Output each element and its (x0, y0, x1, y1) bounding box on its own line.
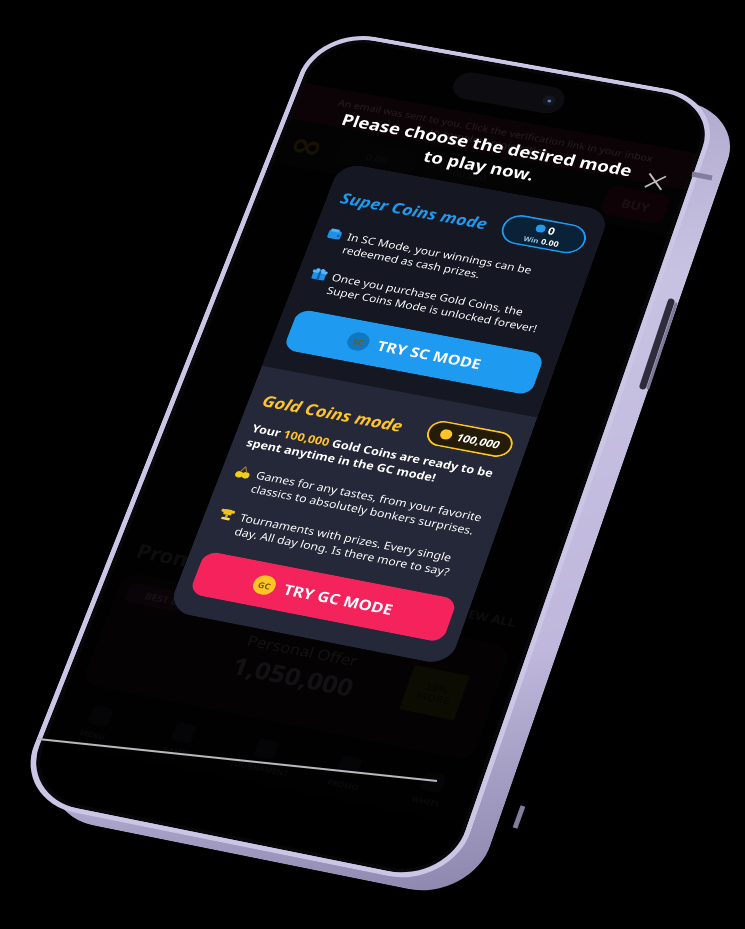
staticText: An email was sent to you. Click the veri… (332, 96, 655, 176)
staticText: Promotions (133, 536, 269, 587)
staticText: 1,050,000 (228, 648, 359, 703)
staticText: 100,000 (455, 430, 503, 451)
staticText: Win (522, 233, 543, 245)
staticText: SC (352, 336, 366, 348)
staticText: TRY SC MODE (374, 336, 484, 373)
staticText: TRY GC MODE (281, 579, 396, 620)
staticText: MENU (78, 727, 107, 742)
button[interactable]: PROMO (295, 738, 398, 808)
staticText: 0.00 (540, 236, 561, 249)
button[interactable]: WHEEL (379, 754, 482, 825)
staticText: Your 100,000 Gold Coins are ready to be … (245, 421, 505, 496)
button[interactable]: GAMES (128, 705, 232, 775)
button[interactable]: MENU (45, 688, 149, 758)
staticText: Please choose the desired mode to play n… (322, 107, 644, 203)
staticText: 100,000 (445, 165, 488, 184)
button[interactable]: Close (634, 165, 676, 198)
staticText: Tournaments with prizes. Every single da… (233, 510, 474, 582)
button[interactable]: BUY (599, 185, 671, 225)
staticText: GC (256, 579, 273, 592)
staticText: Super Coins mode (337, 188, 491, 234)
staticText: PROMO (326, 776, 361, 792)
staticText: BEST DEAL (143, 589, 199, 611)
staticText: ∞ (284, 124, 331, 167)
button[interactable]: TOURNAMENT (212, 721, 315, 792)
staticText: In SC Mode, your winnings can be redeeme… (340, 230, 575, 297)
staticText: Gold Coins mode (259, 390, 407, 437)
staticText: 0 (546, 223, 557, 238)
staticText: Games for any tastes, from your favorite… (249, 467, 489, 539)
staticText: BUY (619, 195, 652, 215)
button[interactable]: GC (189, 550, 458, 643)
staticText: Once you purchase Gold Coins, the Super … (325, 270, 560, 338)
button[interactable]: SC (283, 308, 545, 396)
staticText: GAMES (161, 743, 193, 759)
staticText: TOURNAMENT (228, 757, 291, 778)
staticText: VIEW ALL (452, 603, 519, 631)
staticText: Personal Offer (244, 630, 361, 671)
